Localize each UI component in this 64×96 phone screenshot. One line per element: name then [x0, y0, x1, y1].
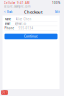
staticText: Alice Chen: [15, 17, 31, 21]
button[interactable]: < Back: [4, 10, 12, 14]
button[interactable]: Continue: [4, 34, 57, 39]
staticText: < Back: [4, 10, 12, 14]
staticText: Del: [2, 91, 7, 94]
staticText: secure.example.com: [4, 5, 30, 8]
staticText: 100%: [52, 1, 60, 5]
button[interactable]: Del: [1, 90, 8, 95]
staticText: Continue: [24, 35, 38, 38]
staticText: Edit: [55, 10, 60, 14]
staticText: Checkout: [24, 9, 43, 15]
staticText: Name: [4, 17, 11, 21]
staticText: Phone: [4, 26, 14, 30]
staticText: 555-0134: [18, 26, 33, 30]
staticText: a@mail.co: [14, 22, 26, 25]
staticText: Email: [4, 22, 10, 25]
staticText: Cellular 9:41 AM: [4, 1, 29, 5]
button[interactable]: Edit: [55, 10, 60, 14]
